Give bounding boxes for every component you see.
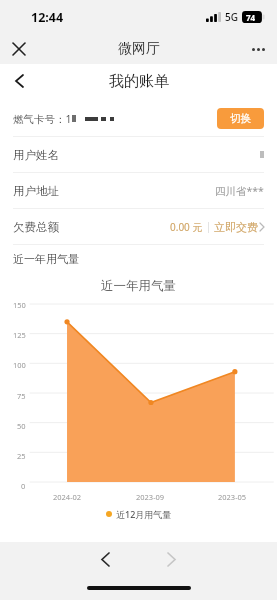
staticText: 近一年用气量 xyxy=(13,252,79,266)
staticText: 12:44 xyxy=(31,9,64,26)
button[interactable]: More options xyxy=(243,34,273,64)
staticText: 74 xyxy=(246,12,256,23)
staticText: 立即交费 xyxy=(214,220,258,234)
staticText: 微网厅 xyxy=(118,40,160,58)
button[interactable]: Back xyxy=(3,65,35,97)
button[interactable]: Back xyxy=(88,542,122,576)
staticText: 75 xyxy=(17,391,26,401)
staticText: 用户地址 xyxy=(13,184,59,198)
button[interactable]: 切换 xyxy=(217,108,264,129)
staticText: 150 xyxy=(13,300,26,310)
staticText: 我的账单 xyxy=(109,72,169,91)
staticText: 用户姓名 xyxy=(13,148,59,162)
staticText: 2023-09 xyxy=(136,492,165,502)
staticText: 125 xyxy=(13,330,26,340)
staticText: 50 xyxy=(17,421,26,431)
button[interactable]: 立即交费 xyxy=(214,220,264,234)
staticText: 2024-02 xyxy=(53,492,82,502)
staticText: 欠费总额 xyxy=(13,220,59,234)
button[interactable]: Forward xyxy=(154,542,188,576)
staticText: 四川省*** xyxy=(215,184,264,198)
button[interactable]: 用户姓名 xyxy=(0,137,277,172)
staticText: 25 xyxy=(17,451,26,461)
staticText: 切换 xyxy=(230,112,251,125)
button[interactable]: Close xyxy=(4,34,34,64)
staticText: 2023-05 xyxy=(218,492,247,502)
staticText: 近一年用气量 xyxy=(101,278,176,294)
staticText: 0.00 元 xyxy=(170,220,203,234)
staticText: 燃气卡号：1 xyxy=(13,112,72,126)
staticText: 近12月用气量 xyxy=(116,508,172,520)
staticText: 0 xyxy=(21,481,26,491)
button[interactable]: 用户地址 xyxy=(0,173,277,208)
button[interactable]: 欠费总额 xyxy=(0,209,277,244)
staticText: 100 xyxy=(13,360,26,370)
staticText: 5G xyxy=(225,10,238,24)
